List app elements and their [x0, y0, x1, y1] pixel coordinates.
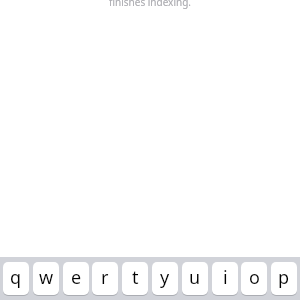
button[interactable]: y [152, 262, 178, 295]
button[interactable]: t [122, 262, 148, 295]
staticText: t [132, 265, 139, 290]
staticText: e [71, 265, 82, 290]
button[interactable]: u [182, 262, 208, 295]
staticText: i [223, 265, 228, 290]
button[interactable]: i [212, 262, 238, 295]
button[interactable]: e [63, 262, 89, 295]
staticText: u [189, 265, 201, 290]
staticText: y [160, 265, 170, 290]
staticText: q [10, 265, 22, 290]
button[interactable]: o [241, 262, 267, 295]
staticText: p [278, 265, 290, 290]
button[interactable]: w [33, 262, 59, 295]
button[interactable]: r [92, 262, 118, 295]
staticText: r [101, 265, 109, 290]
button[interactable]: p [271, 262, 297, 295]
staticText: w [39, 265, 54, 290]
staticText: o [249, 265, 260, 290]
button[interactable]: q [3, 262, 29, 295]
staticText: finishes indexing. [0, 0, 300, 9]
